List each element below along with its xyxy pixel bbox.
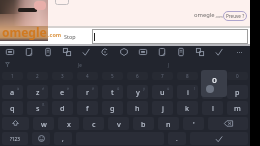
staticText: p	[235, 87, 240, 97]
staticText: 1	[11, 73, 14, 79]
staticText: f	[86, 103, 89, 113]
button[interactable]: r	[77, 85, 98, 99]
button[interactable]: w	[33, 117, 54, 130]
button[interactable]: f	[77, 101, 98, 115]
button[interactable]: v	[108, 117, 129, 130]
staticText: x	[67, 119, 71, 129]
staticText: j	[162, 103, 164, 113]
staticText: é	[42, 86, 45, 91]
staticText: omegle	[194, 11, 215, 19]
staticText: ß	[42, 102, 45, 107]
button[interactable]: 0	[227, 72, 248, 80]
button[interactable]: 7	[152, 72, 173, 80]
staticText: q	[10, 103, 15, 113]
button[interactable]: a	[2, 85, 23, 99]
button[interactable]: h	[127, 101, 148, 115]
staticText: .	[176, 134, 178, 143]
button[interactable]: i	[177, 85, 198, 99]
button[interactable]: Enter	[190, 132, 248, 145]
staticText: 4	[86, 73, 89, 79]
button[interactable]: k	[177, 101, 198, 115]
button[interactable]: Translate	[57, 46, 76, 58]
staticText: i	[187, 87, 189, 97]
button[interactable]: '	[183, 117, 204, 130]
staticText: d	[60, 103, 65, 113]
button[interactable]: Edit	[76, 46, 95, 58]
button[interactable]: p	[227, 85, 248, 99]
button[interactable]: b	[133, 117, 154, 130]
staticText: 9	[211, 73, 214, 79]
staticText: à	[17, 86, 20, 91]
button[interactable]: l	[202, 101, 223, 115]
button[interactable]: ?123	[2, 132, 28, 145]
button[interactable]: e	[52, 85, 73, 99]
button[interactable]: 2	[27, 72, 48, 80]
button[interactable]: Stop	[60, 28, 80, 44]
staticText: y	[136, 87, 140, 97]
staticText: n	[166, 119, 171, 129]
button[interactable]: More options	[228, 46, 250, 58]
staticText: c	[92, 119, 96, 129]
staticText: ê	[92, 86, 95, 91]
button[interactable]: Theme	[95, 46, 114, 58]
staticText: r	[86, 87, 90, 97]
staticText: h	[135, 103, 140, 113]
button[interactable]: Emoji	[32, 132, 50, 145]
button[interactable]: Backspace	[208, 117, 248, 130]
button[interactable]: q	[2, 101, 23, 115]
button[interactable]: 3	[52, 72, 73, 80]
button[interactable]: z	[27, 85, 48, 99]
button[interactable]: Settings	[133, 46, 152, 58]
button[interactable]: 6	[127, 72, 148, 80]
staticText: 6	[136, 73, 139, 79]
button[interactable]: GIF	[38, 46, 57, 58]
staticText: e	[60, 87, 65, 97]
button[interactable]: o	[202, 85, 223, 99]
button[interactable]: ,	[54, 132, 72, 145]
staticText: î	[194, 86, 195, 91]
button[interactable]: 8	[177, 72, 198, 80]
staticText: ù	[167, 86, 170, 91]
staticText: Je	[78, 62, 82, 68]
staticText: 0	[236, 73, 239, 79]
button[interactable]: Clipboard	[0, 46, 19, 58]
staticText: o	[212, 74, 217, 85]
button[interactable]: Sticker	[19, 46, 38, 58]
button[interactable]: d	[52, 101, 73, 115]
button[interactable]: Voice	[152, 46, 171, 58]
staticText: 2	[36, 73, 39, 79]
button[interactable]: 5	[102, 72, 123, 80]
button[interactable]: n	[158, 117, 179, 130]
staticText: .com	[48, 31, 62, 38]
button[interactable]: 1	[2, 72, 23, 80]
button[interactable]: Page button	[55, 0, 69, 5]
button[interactable]: Keyboard	[209, 46, 228, 58]
button[interactable]: Preuve ?	[223, 11, 247, 21]
button[interactable]: m	[227, 101, 248, 115]
button[interactable]: g	[102, 101, 123, 115]
button[interactable]: Shift	[2, 117, 29, 130]
staticText: '	[193, 119, 195, 129]
button[interactable]: s	[27, 101, 48, 115]
staticText: k	[185, 103, 190, 113]
staticText: ÿ	[143, 86, 145, 91]
button[interactable]: t	[102, 85, 123, 99]
staticText: o	[210, 87, 215, 97]
button[interactable]: u	[152, 85, 173, 99]
button[interactable]: y	[127, 85, 148, 99]
button[interactable]: .	[168, 132, 186, 145]
button[interactable]: x	[58, 117, 79, 130]
button[interactable]: j	[152, 101, 173, 115]
button[interactable]: Camera	[190, 46, 209, 58]
button[interactable]: c	[83, 117, 104, 130]
button[interactable]: 9	[202, 72, 223, 80]
button[interactable]: 4	[77, 72, 98, 80]
staticText: 7	[161, 73, 164, 79]
button[interactable]: Undo	[114, 46, 133, 58]
button[interactable]: Search	[171, 46, 190, 58]
button[interactable]: Voice input	[5, 62, 10, 67]
button[interactable]	[92, 29, 248, 44]
staticText: a	[10, 87, 15, 97]
